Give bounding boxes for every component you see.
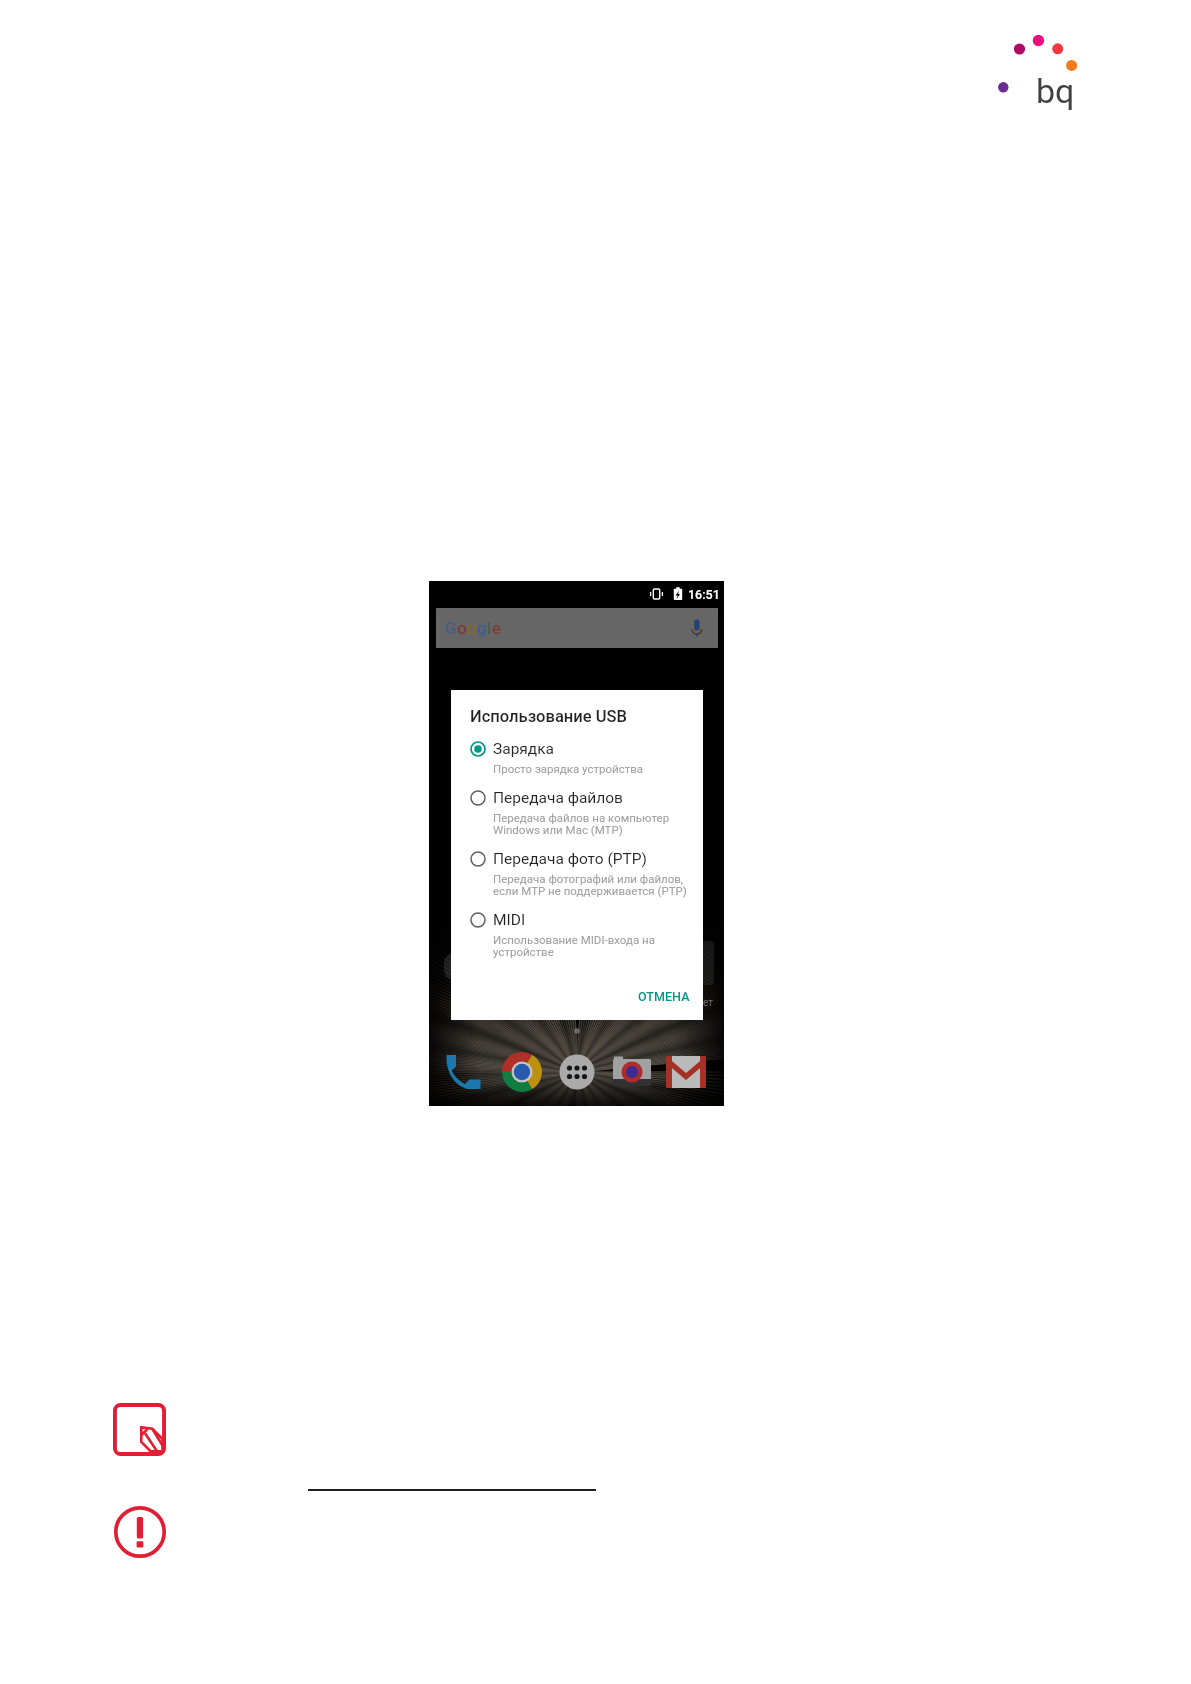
staticText: Использование USB (470, 707, 627, 726)
button[interactable]: MIDI (470, 911, 691, 959)
staticText: e (492, 618, 502, 638)
staticText: MIDI (493, 911, 526, 929)
staticText: Использование MIDI-входа на устройстве (493, 933, 655, 959)
button[interactable]: Chrome (502, 1052, 542, 1092)
button[interactable]: Gmail (665, 1055, 707, 1089)
button[interactable]: Передача файлов (470, 789, 691, 837)
staticText: Передача файлов (493, 789, 623, 807)
staticText: Передача файлов на компьютер Windows или… (493, 811, 670, 837)
staticText: o (457, 618, 467, 638)
other: Note (113, 1403, 166, 1456)
staticText: ОТМЕНА (638, 989, 690, 1004)
button[interactable]: ОТМЕНА (632, 985, 696, 1008)
button[interactable]: Передача фото (PTP) (470, 850, 691, 898)
staticText: Просто зарядка устройства (493, 762, 644, 775)
staticText: g (477, 618, 487, 638)
staticText: o (467, 618, 477, 638)
staticText: Передача фото (PTP) (493, 850, 647, 868)
button[interactable]: Google search (436, 608, 718, 648)
staticText: ет (703, 997, 714, 1009)
button[interactable]: Зарядка (470, 740, 691, 775)
button[interactable]: Phone (443, 1052, 483, 1092)
staticText: l (487, 618, 492, 638)
button[interactable]: Camera (612, 1053, 652, 1091)
button[interactable]: Voice search (683, 610, 709, 646)
other: Warning (114, 1506, 166, 1558)
button[interactable]: All apps (559, 1054, 595, 1090)
staticText: Зарядка (493, 740, 555, 758)
staticText: bq (1036, 71, 1075, 111)
staticText: 16:51 (688, 587, 720, 602)
staticText: Передача фотографий или файлов, если MTP… (493, 872, 687, 898)
staticText: G (445, 618, 457, 638)
